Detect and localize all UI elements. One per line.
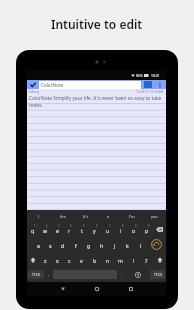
- staticText: w: [43, 227, 48, 234]
- button[interactable]: 8: [114, 222, 127, 237]
- staticText: !: [133, 257, 135, 264]
- button[interactable]: a: [97, 210, 120, 222]
- button[interactable]: Enter: [147, 237, 166, 252]
- button[interactable]: x: [51, 252, 63, 267]
- button[interactable]: 3: [51, 222, 63, 237]
- button[interactable]: Shift: [153, 252, 166, 267]
- button[interactable]: 0: [140, 222, 153, 237]
- button[interactable]: c: [63, 252, 75, 267]
- button[interactable]: Recent apps: [126, 284, 136, 294]
- button[interactable]: b: [88, 252, 101, 267]
- button[interactable]: z: [39, 252, 51, 267]
- button[interactable]: l: [134, 237, 147, 252]
- staticText: 12/28/16 10:18 AM: [136, 90, 164, 94]
- button[interactable]: ColorNote Simplify your life. It's never…: [27, 94, 166, 210]
- staticText: Intuitive to edit: [51, 16, 143, 32]
- staticText: I'm: [129, 214, 135, 219]
- button[interactable]: Period: [117, 270, 126, 279]
- button[interactable]: Backspace: [153, 222, 166, 237]
- button[interactable]: v: [75, 252, 88, 267]
- staticText: 6: [96, 224, 98, 228]
- button[interactable]: !: [127, 252, 140, 267]
- staticText: n: [106, 257, 110, 264]
- button[interactable]: I'm: [120, 210, 143, 222]
- staticText: z: [44, 257, 47, 264]
- staticText: j: [114, 242, 116, 249]
- staticText: m: [118, 257, 123, 264]
- staticText: .: [121, 271, 123, 277]
- staticText: 1: [34, 224, 36, 228]
- staticText: Editing: [29, 90, 40, 94]
- button[interactable]: Shift: [27, 252, 39, 267]
- button[interactable]: 5: [75, 222, 88, 237]
- staticText: 0: [148, 224, 150, 228]
- staticText: i: [120, 227, 122, 234]
- button[interactable]: s: [44, 237, 56, 252]
- button[interactable]: ?: [140, 252, 153, 267]
- staticText: y: [93, 227, 96, 234]
- staticText: ?123: [154, 272, 162, 277]
- button[interactable]: k: [121, 237, 134, 252]
- staticText: q: [31, 227, 35, 234]
- staticText: It's: [83, 214, 89, 219]
- staticText: ColorNote: [41, 82, 64, 88]
- button[interactable]: Back: [58, 284, 68, 294]
- staticText: 9: [135, 224, 137, 228]
- button[interactable]: 4: [63, 222, 75, 237]
- staticText: v: [80, 257, 83, 264]
- button[interactable]: Voice input: [126, 270, 150, 279]
- staticText: s: [49, 242, 52, 249]
- staticText: 8: [122, 224, 124, 228]
- button[interactable]: m: [114, 252, 127, 267]
- staticText: the: [60, 214, 66, 219]
- staticText: 4: [70, 224, 72, 228]
- staticText: 85%: [136, 73, 143, 78]
- button[interactable]: h: [95, 237, 108, 252]
- staticText: u: [106, 227, 110, 234]
- staticText: c: [68, 257, 71, 264]
- button[interactable]: It's: [74, 210, 97, 222]
- staticText: 7: [109, 224, 111, 228]
- staticText: k: [126, 242, 129, 249]
- button[interactable]: you: [143, 210, 166, 222]
- staticText: l: [140, 242, 142, 249]
- button[interactable]: I: [27, 210, 51, 222]
- staticText: ColorNote Simplify your life. It's never…: [29, 95, 163, 109]
- staticText: I: [38, 214, 40, 219]
- staticText: 5: [83, 224, 85, 228]
- staticText: d: [61, 242, 65, 249]
- staticText: you: [151, 214, 158, 219]
- button[interactable]: a: [32, 237, 44, 252]
- staticText: e: [56, 227, 59, 234]
- button[interactable]: d: [56, 237, 69, 252]
- button[interactable]: ?123: [28, 270, 44, 279]
- button[interactable]: g: [82, 237, 95, 252]
- staticText: 3: [58, 224, 60, 228]
- button[interactable]: the: [51, 210, 74, 222]
- button[interactable]: n: [101, 252, 114, 267]
- button[interactable]: Save note: [27, 80, 39, 89]
- button[interactable]: ?123: [150, 270, 165, 279]
- staticText: h: [100, 242, 104, 249]
- staticText: t: [81, 227, 83, 234]
- staticText: x: [56, 257, 59, 264]
- button[interactable]: More options: [156, 80, 163, 89]
- button[interactable]: j: [108, 237, 121, 252]
- staticText: g: [87, 242, 91, 249]
- button[interactable]: 2: [39, 222, 51, 237]
- staticText: p: [145, 227, 149, 234]
- staticText: f: [75, 242, 77, 249]
- button[interactable]: Comma: [44, 270, 53, 279]
- button[interactable]: 1: [27, 222, 39, 237]
- staticText: a: [107, 214, 110, 219]
- staticText: 10:31: [151, 73, 160, 78]
- staticText: a: [37, 242, 40, 249]
- button[interactable]: 9: [127, 222, 140, 237]
- staticText: 2: [46, 224, 48, 228]
- button[interactable]: 7: [101, 222, 114, 237]
- button[interactable]: 6: [88, 222, 101, 237]
- button[interactable]: Home: [92, 284, 102, 294]
- button[interactable]: f: [69, 237, 82, 252]
